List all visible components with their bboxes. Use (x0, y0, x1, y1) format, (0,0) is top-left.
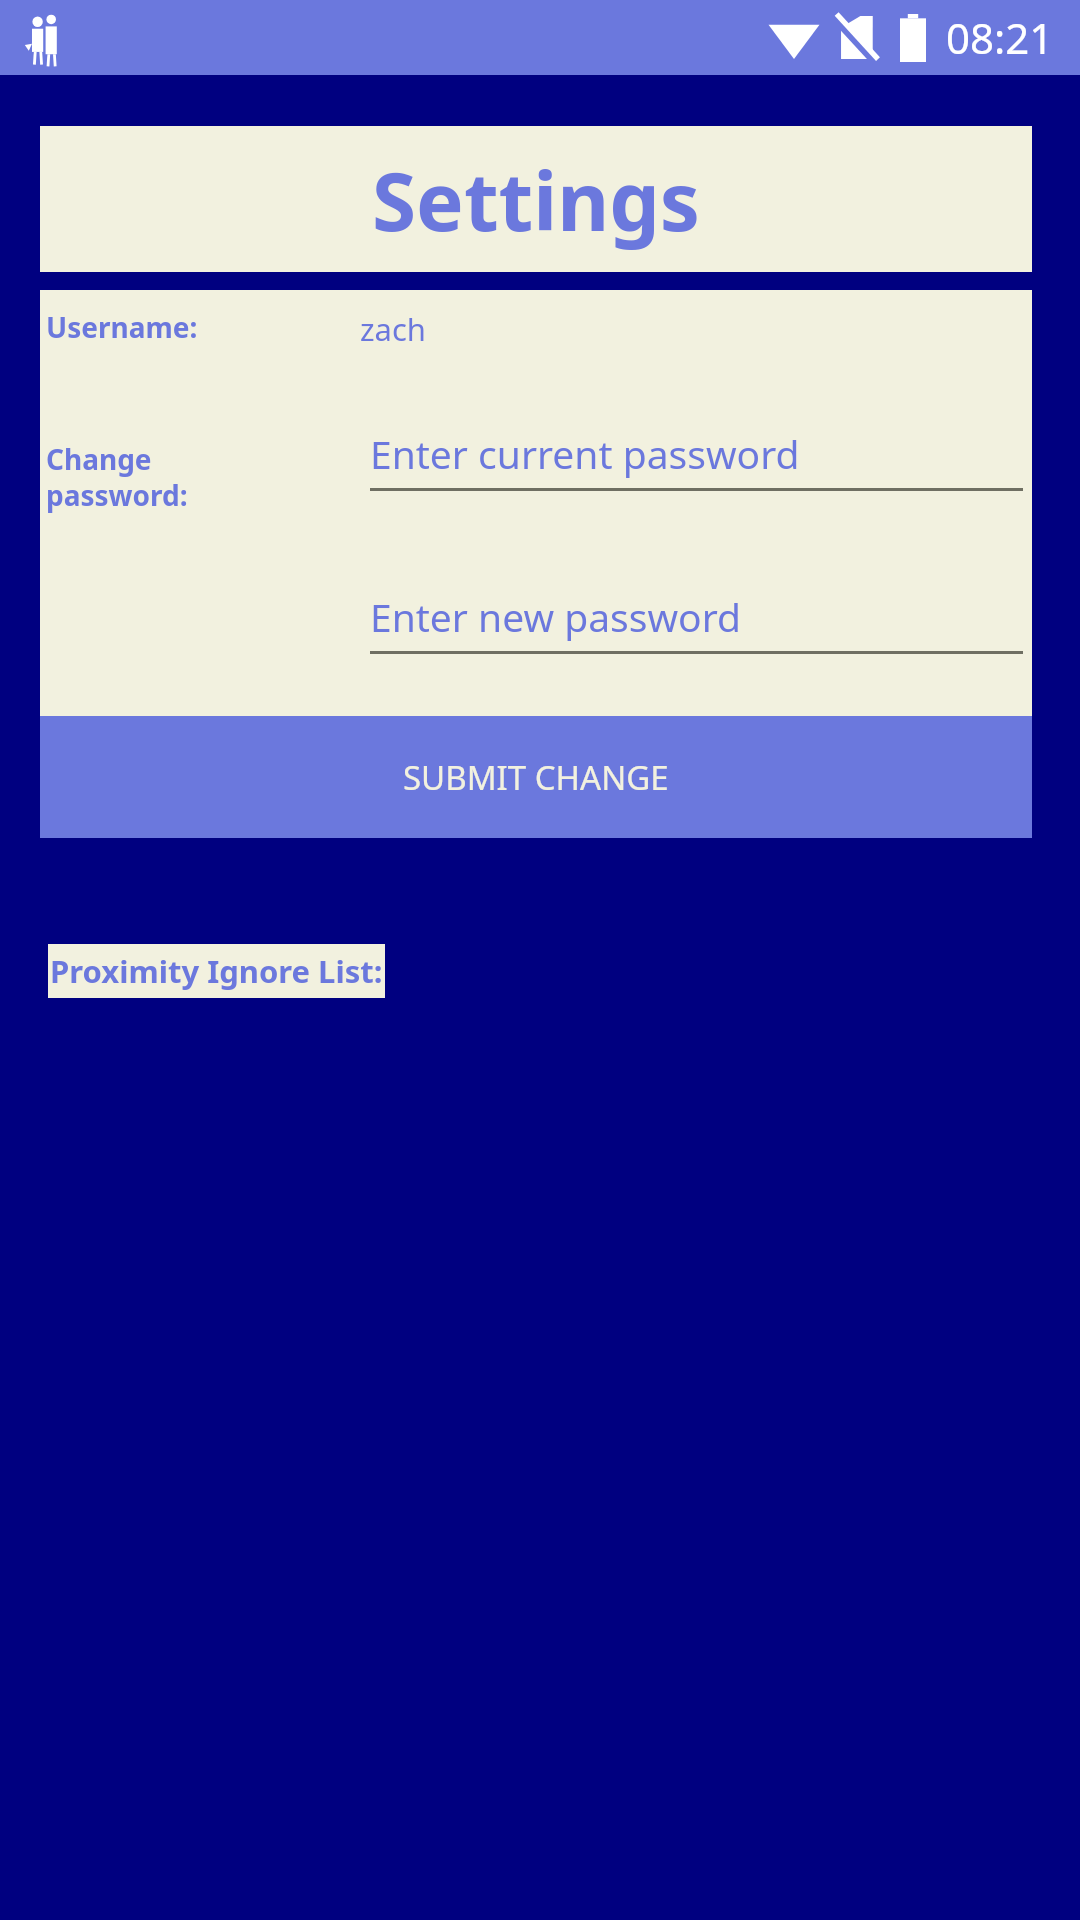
button[interactable]: Settings (40, 126, 1032, 272)
staticText: Settings (372, 145, 700, 254)
staticText: SUBMIT CHANGE (403, 755, 669, 800)
staticText: zach (360, 308, 426, 350)
button[interactable]: Enter new password (370, 590, 1023, 654)
other: Battery (900, 14, 926, 62)
button[interactable]: Proximity Ignore List: (50, 950, 383, 992)
button[interactable]: SUBMIT CHANGE (40, 716, 1032, 838)
staticText: Username: (46, 308, 198, 346)
other: No SIM card (834, 14, 878, 62)
staticText: Change password: (46, 440, 206, 514)
other: Notification (24, 9, 64, 67)
staticText: Proximity Ignore List: (50, 950, 383, 992)
staticText: Enter new password (370, 590, 742, 643)
other: Wi-Fi (768, 16, 820, 60)
staticText: 08:21 (946, 9, 1054, 66)
button[interactable]: Enter current password (370, 427, 1023, 491)
staticText: Enter current password (370, 427, 800, 480)
